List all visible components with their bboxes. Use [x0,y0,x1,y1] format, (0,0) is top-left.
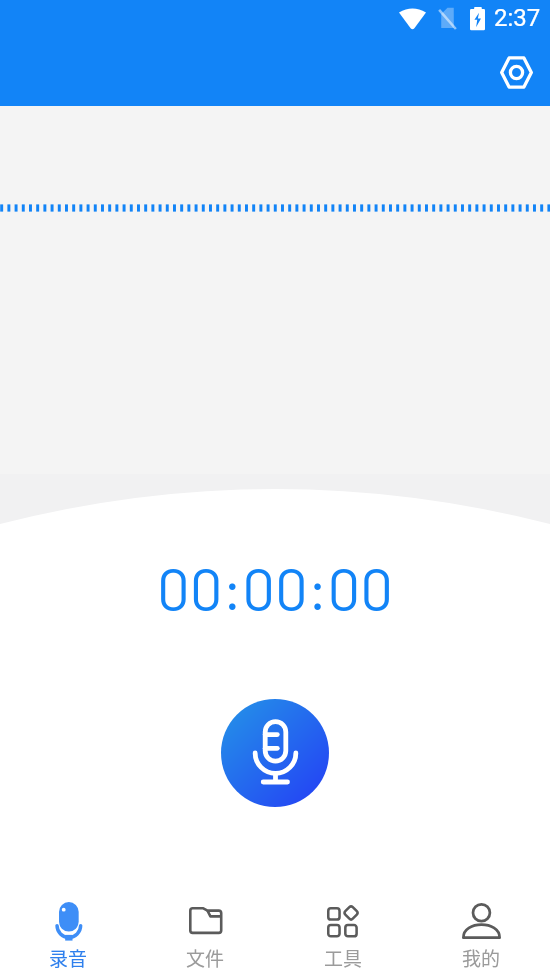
button[interactable]: 录音 [0,895,137,979]
staticText: 2:37 [494,4,541,32]
staticText: 我的 [462,944,501,972]
button[interactable]: 文件 [137,895,274,979]
staticText: 00:00:00 [157,553,393,623]
staticText: 工具 [324,944,363,972]
staticText: 录音 [49,944,88,972]
button[interactable]: 工具 [274,895,412,979]
button[interactable]: 我的 [412,895,550,979]
button[interactable]: Settings [495,51,538,94]
button[interactable]: Start recording [221,699,329,807]
staticText: 文件 [186,944,225,972]
